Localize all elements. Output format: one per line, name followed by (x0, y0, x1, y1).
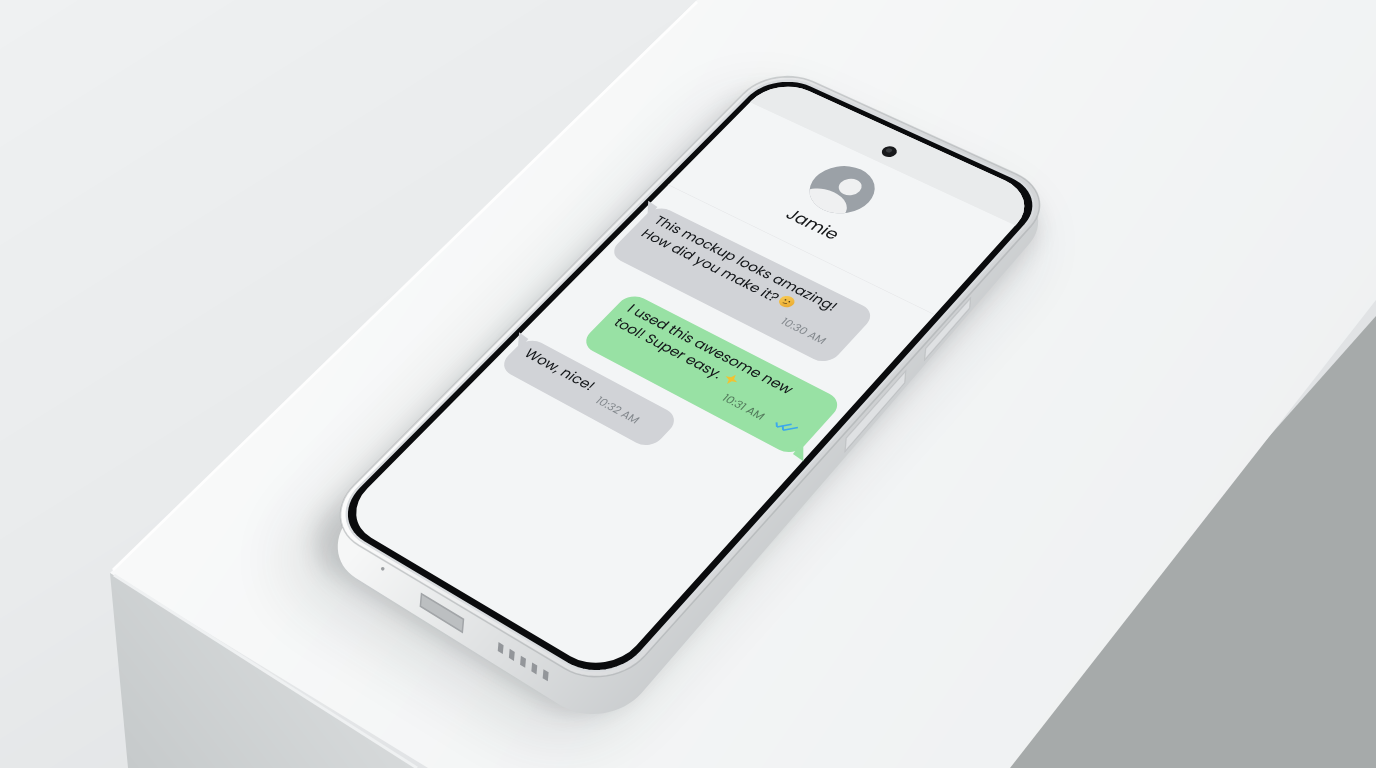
button[interactable]: Chat conversation with Jamie shown on a … (0, 0, 1376, 768)
